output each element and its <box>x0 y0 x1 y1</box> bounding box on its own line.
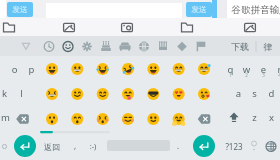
staticText: w <box>240 63 253 76</box>
staticText: . <box>173 140 183 151</box>
staticText: a <box>232 87 245 100</box>
button[interactable]: Enter <box>14 135 36 157</box>
staticText: ?123 <box>221 141 247 152</box>
staticText: 发送 <box>7 5 33 14</box>
staticText: d <box>265 87 278 100</box>
staticText: s <box>248 87 261 100</box>
staticText: :-) <box>85 141 101 151</box>
staticText: o <box>8 63 21 76</box>
staticText: 2 <box>242 72 251 78</box>
staticText: m <box>0 111 12 124</box>
staticText: q <box>224 63 237 76</box>
staticText: 发送 <box>186 5 212 14</box>
staticText: e <box>257 63 270 76</box>
staticText: z <box>248 111 261 124</box>
button[interactable]: Enter <box>193 135 215 157</box>
staticText: 下载 <box>227 41 253 52</box>
staticText: p <box>25 63 38 76</box>
staticText: 律 <box>259 41 277 52</box>
staticText: 4 <box>275 72 280 78</box>
staticText: k <box>0 87 11 100</box>
staticText: r <box>273 63 280 76</box>
staticText: 谷歌拼音输入 <box>227 4 280 16</box>
staticText: 1 <box>226 72 235 78</box>
staticText: 3 <box>259 72 268 78</box>
staticText: 返回 <box>41 142 63 152</box>
staticText: x <box>265 111 278 124</box>
staticText: , <box>70 140 80 151</box>
staticText: l <box>15 87 28 100</box>
